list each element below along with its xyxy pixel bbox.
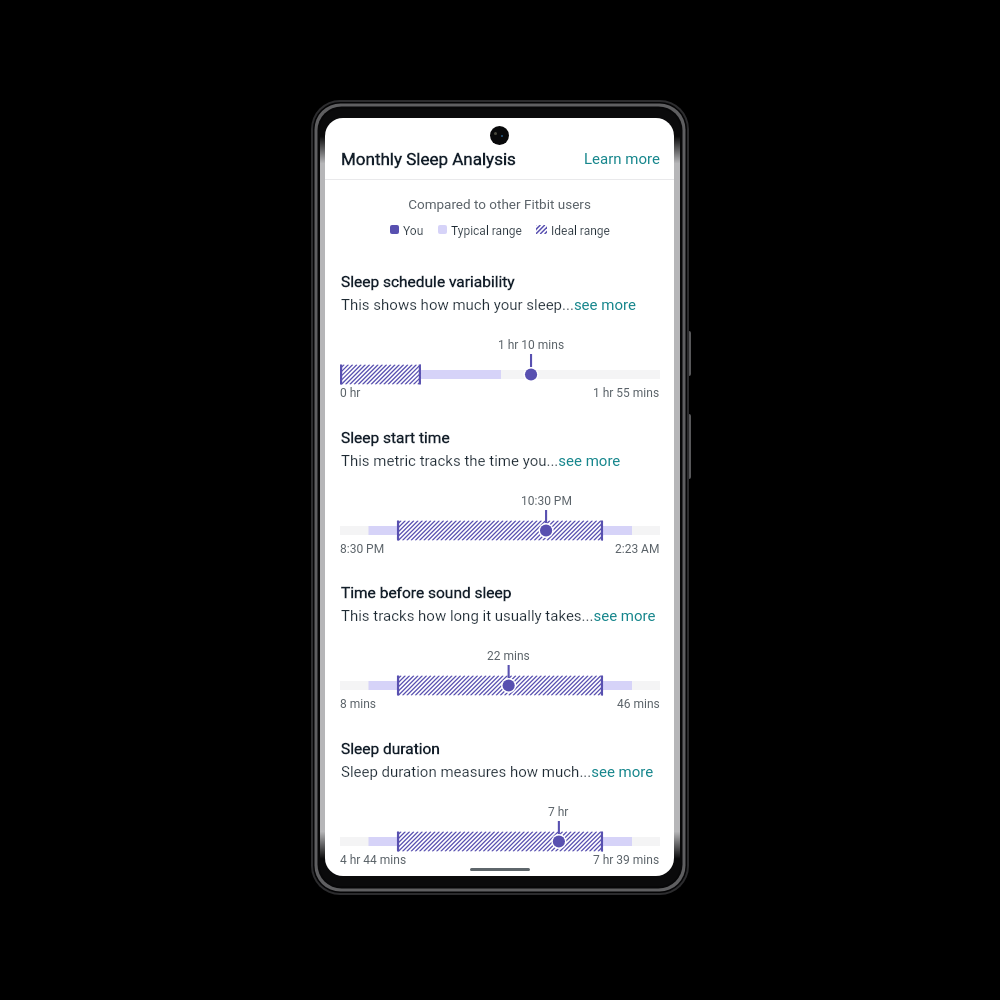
staticText: Sleep duration measures how much...see m… <box>341 763 654 781</box>
staticText: 7 hr 39 mins <box>593 853 660 867</box>
staticText: Typical range <box>451 224 522 238</box>
staticText: You <box>403 224 424 238</box>
staticText: 8:30 PM <box>340 542 385 556</box>
button[interactable]: This shows how much your sleep...see mor… <box>341 296 636 314</box>
staticText: Ideal range <box>551 224 610 238</box>
staticText: 2:23 AM <box>615 542 660 556</box>
button[interactable]: Learn more <box>584 150 660 168</box>
staticText: This shows how much your sleep...see mor… <box>341 296 636 314</box>
staticText: 1 hr 55 mins <box>593 386 660 400</box>
button[interactable]: Sleep duration measures how much...see m… <box>341 763 654 781</box>
staticText: 1 hr 10 mins <box>498 338 565 352</box>
button[interactable]: Monthly Sleep Analysis <box>341 149 516 169</box>
staticText: 7 hr <box>548 805 569 819</box>
staticText: Sleep duration <box>341 740 440 758</box>
staticText: Time before sound sleep <box>341 584 512 602</box>
staticText: Compared to other Fitbit users <box>325 196 674 212</box>
staticText: 8 mins <box>340 697 376 711</box>
staticText: This metric tracks the time you...see mo… <box>341 452 621 470</box>
staticText: This tracks how long it usually takes...… <box>341 607 656 625</box>
staticText: 22 mins <box>487 649 530 663</box>
staticText: 0 hr <box>340 386 361 400</box>
button[interactable]: This tracks how long it usually takes...… <box>341 607 656 625</box>
staticText: Learn more <box>584 150 660 168</box>
button[interactable]: Sleep schedule variability <box>341 273 515 291</box>
staticText: 4 hr 44 mins <box>340 853 407 867</box>
staticText: 10:30 PM <box>521 494 572 508</box>
button[interactable]: Sleep start time <box>341 429 450 447</box>
staticText: 46 mins <box>617 697 660 711</box>
staticText: Sleep schedule variability <box>341 273 515 291</box>
button[interactable]: Time before sound sleep <box>341 584 512 602</box>
button[interactable]: This metric tracks the time you...see mo… <box>341 452 621 470</box>
staticText: Sleep start time <box>341 429 450 447</box>
button[interactable]: Sleep duration <box>341 740 440 758</box>
staticText: Monthly Sleep Analysis <box>341 149 516 169</box>
